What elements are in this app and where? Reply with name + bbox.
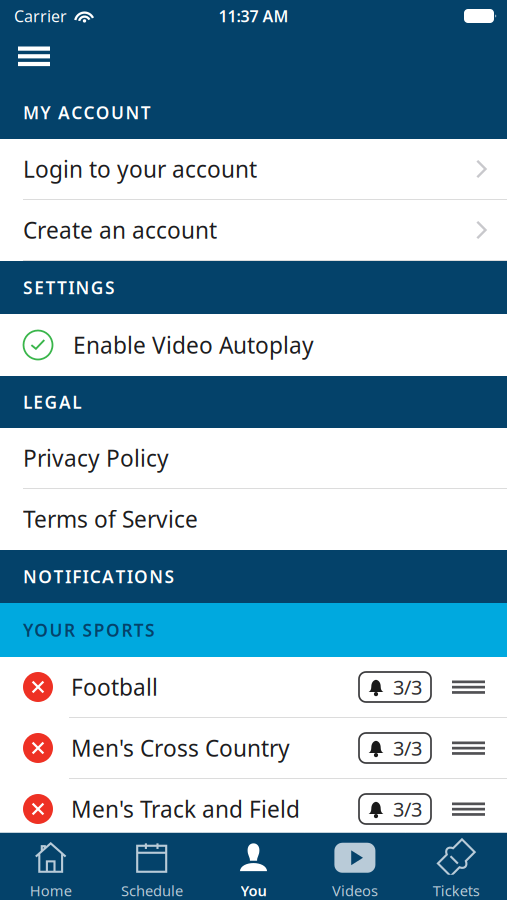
staticText: 11:37 AM [218,5,288,27]
staticText: Men's Track and Field [71,794,300,824]
staticText: R [64,618,75,641]
button[interactable]: Schedule [101,833,203,900]
button[interactable]: Tickets [406,833,507,900]
staticText: O [38,565,52,588]
staticText: G [91,276,104,299]
staticText: L [23,390,32,413]
staticText: Login to your account [23,154,257,184]
staticText: S [165,565,175,588]
button[interactable]: Men's Cross Country [0,718,507,779]
staticText: C [90,565,101,588]
staticText: A [59,390,71,413]
staticText: U [50,618,63,641]
staticText: You [240,881,266,900]
staticText: G [45,390,58,413]
staticText: R [121,618,132,641]
staticText: Videos [332,881,378,900]
staticText: 3/3 [393,674,422,700]
staticText: C [71,101,82,124]
staticText: I [127,565,133,588]
staticText: T [57,276,67,299]
button[interactable]: Enable Video Autoplay [0,314,507,376]
staticText: N [149,565,163,588]
button[interactable]: Privacy Policy [0,428,507,489]
staticText: N [23,565,37,588]
staticText: Enable Video Autoplay [73,330,314,360]
button[interactable]: Videos [304,833,406,900]
staticText: S [82,618,92,641]
staticText: E [33,390,43,413]
staticText: Tickets [433,881,480,900]
staticText: E [34,276,44,299]
staticText: O [134,565,148,588]
staticText: I [82,565,88,588]
staticText: P [94,618,105,641]
staticText: N [125,101,139,124]
staticText: T [115,565,125,588]
button[interactable]: You [203,833,304,900]
button[interactable]: Men's Track and Field [0,779,507,840]
staticText: Home [30,881,72,900]
staticText: Terms of Service [23,504,198,534]
staticText: I [65,565,71,588]
button[interactable]: Menu [0,32,72,85]
staticText: O [96,101,110,124]
staticText: N [75,276,89,299]
button[interactable]: Football [0,657,507,718]
button[interactable]: Create an account [0,200,507,261]
staticText: O [106,618,120,641]
staticText: L [72,390,81,413]
button[interactable]: Terms of Service [0,489,507,550]
staticText: 3/3 [393,735,422,761]
staticText: Schedule [121,881,183,900]
staticText: Privacy Policy [23,443,169,473]
staticText: C [83,101,94,124]
staticText: Football [71,672,158,702]
staticText: O [34,618,48,641]
staticText: T [54,565,64,588]
staticText: I [68,276,74,299]
staticText: T [141,101,151,124]
staticText: M [23,101,39,124]
staticText: T [46,276,56,299]
staticText: F [72,565,81,588]
staticText: U [111,101,124,124]
button[interactable]: Home [0,833,101,900]
staticText: A [58,101,70,124]
staticText: Carrier [14,5,67,27]
button[interactable]: Login to your account [0,139,507,200]
staticText: S [105,276,115,299]
staticText: S [145,618,155,641]
staticText: 3/3 [393,796,422,822]
staticText: S [23,276,33,299]
staticText: T [134,618,144,641]
staticText: Create an account [23,215,217,245]
staticText: Y [23,618,33,641]
staticText: Men's Cross Country [71,733,290,763]
staticText: A [102,565,114,588]
staticText: Y [40,101,50,124]
